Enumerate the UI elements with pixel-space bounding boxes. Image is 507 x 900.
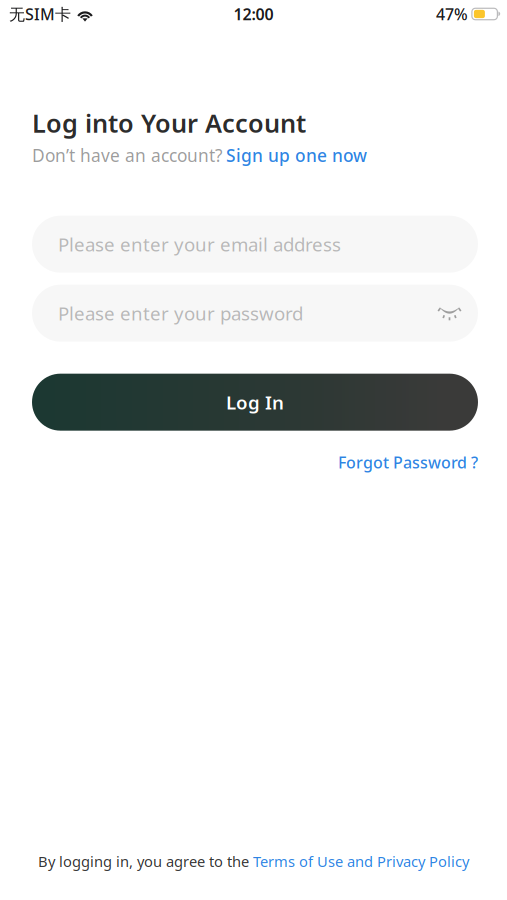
staticText: Sign up one now (226, 144, 367, 167)
button[interactable]: Please enter your email address (32, 216, 478, 273)
staticText: Don’t have an account? (32, 144, 223, 167)
button[interactable]: Terms of Use and Privacy Policy (253, 851, 469, 871)
staticText: 无SIM卡 (9, 3, 71, 25)
staticText: Please enter your password (58, 301, 303, 326)
button[interactable]: Sign up one now (226, 144, 367, 167)
button[interactable]: Show password (428, 285, 478, 342)
staticText: Forgot Password ? (338, 452, 478, 473)
staticText: 47% (436, 3, 468, 25)
button[interactable]: Please enter your password (32, 285, 428, 342)
staticText: Log In (226, 390, 284, 415)
staticText: 12:00 (233, 3, 273, 25)
staticText: Please enter your email address (58, 232, 341, 257)
button[interactable]: Forgot Password ? (338, 452, 478, 473)
staticText: Log into Your Account (32, 106, 306, 140)
staticText: Terms of Use and Privacy Policy (253, 851, 469, 871)
button[interactable]: Log In (32, 374, 478, 431)
staticText: By logging in, you agree to the (38, 851, 253, 871)
